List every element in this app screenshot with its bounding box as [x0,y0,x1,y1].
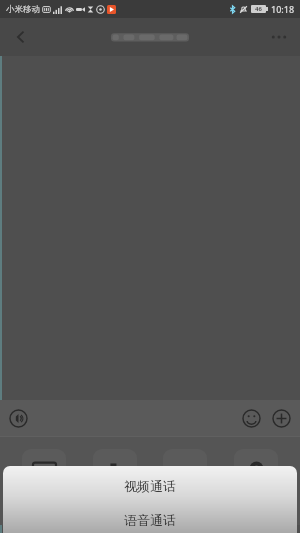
button[interactable]: Back [4,20,38,54]
button[interactable]: 语音通话 [3,506,297,533]
staticText: 46 [255,5,262,13]
staticText: 相册 [36,498,53,509]
staticText: 视频通话 [124,478,176,494]
staticText: 拍摄 [107,498,124,509]
staticText: 视频通话 [168,498,202,509]
button[interactable]: Location [225,449,287,509]
button[interactable]: Camera [84,449,146,509]
button[interactable]: Video call [154,449,216,509]
staticText: 10:18 [271,3,295,15]
button[interactable]: Voice message [3,403,33,433]
button[interactable]: More [266,403,296,433]
staticText: 位置 [248,498,265,509]
staticText: 小米移动 [6,4,40,15]
staticText: 语音通话 [124,512,176,528]
button[interactable]: 视频通话 [3,466,297,506]
button[interactable]: Photo album [13,449,75,509]
button[interactable]: Emoji [236,403,266,433]
